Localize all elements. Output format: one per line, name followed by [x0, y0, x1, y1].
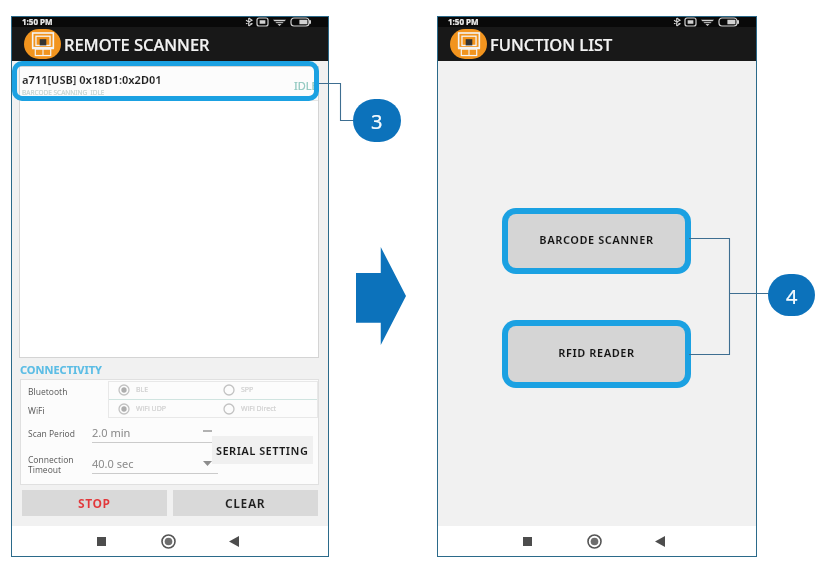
button[interactable]: 40.0 sec — [92, 456, 218, 474]
staticText: 3 — [371, 108, 383, 135]
staticText: BLE — [136, 385, 149, 395]
staticText: Bluetooth — [28, 386, 68, 398]
button[interactable]: Home — [576, 526, 612, 557]
button[interactable]: 3 — [353, 99, 401, 142]
staticText: Scan Period — [28, 428, 92, 440]
button[interactable]: WiFi UDP — [108, 400, 213, 418]
staticText: CLEAR — [225, 495, 266, 511]
button[interactable]: SERIAL SETTING — [212, 436, 313, 464]
staticText: BARCODE SCANNER — [539, 232, 654, 247]
staticText: FUNCTION LIST — [490, 33, 613, 55]
staticText: 4 — [786, 283, 798, 310]
staticText: a711[USB] 0x18D1:0x2D01 — [22, 72, 162, 87]
staticText: 40.0 sec — [92, 456, 203, 471]
staticText: 1:50 PM — [22, 16, 53, 27]
staticText: Connection Timeout — [28, 454, 92, 475]
staticText: IDLE — [294, 78, 318, 93]
staticText: 1:50 PM — [448, 16, 479, 27]
button[interactable]: Recents — [83, 526, 119, 557]
staticText: SPP — [241, 385, 254, 395]
staticText: STOP — [78, 495, 111, 511]
button[interactable]: Back — [642, 526, 678, 557]
button[interactable]: Recents — [509, 526, 545, 557]
button[interactable]: a711[USB] 0x18D1:0x2D01 — [22, 66, 318, 100]
button[interactable]: CLEAR — [173, 490, 318, 516]
button[interactable]: BARCODE SCANNER — [508, 214, 685, 268]
staticText: BARCODE SCANNING IDLE — [22, 88, 105, 97]
staticText: REMOTE SCANNER — [64, 33, 210, 55]
button[interactable]: 2.0 min — [92, 425, 218, 443]
staticText: RFID READER — [558, 345, 635, 360]
staticText: WiFi — [28, 405, 45, 417]
button[interactable]: Home — [150, 526, 186, 557]
button[interactable]: WiFi Direct — [213, 400, 318, 418]
staticText: WiFi UDP — [136, 404, 167, 414]
button[interactable]: BLE — [108, 381, 213, 399]
button[interactable]: SPP — [213, 381, 318, 399]
button[interactable]: Back — [216, 526, 252, 557]
button[interactable]: 4 — [768, 274, 815, 316]
staticText: 2.0 min — [92, 425, 203, 440]
button[interactable]: STOP — [22, 490, 167, 516]
button[interactable]: RFID READER — [508, 326, 685, 382]
staticText: CONNECTIVITY — [20, 362, 102, 377]
staticText: WiFi Direct — [241, 404, 277, 414]
staticText: SERIAL SETTING — [216, 443, 309, 458]
